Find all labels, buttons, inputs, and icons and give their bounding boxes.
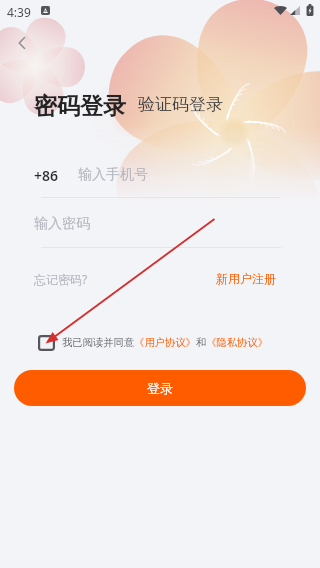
- staticText: 验证码登录: [138, 94, 223, 115]
- staticText: 密码登录: [34, 92, 126, 121]
- staticText: 输入手机号: [78, 166, 148, 184]
- staticText: 我已阅读并同意《用户协议》和《隐私协议》: [62, 336, 268, 349]
- staticText: 4:39: [7, 4, 31, 20]
- button[interactable]: 密码登录: [34, 92, 126, 121]
- staticText: 忘记密码?: [34, 271, 88, 287]
- button[interactable]: 忘记密码?: [34, 271, 88, 287]
- staticText: 登录: [147, 380, 173, 396]
- staticText: 输入密码: [34, 215, 90, 233]
- button[interactable]: Agree to terms: [37, 334, 55, 351]
- button[interactable]: 登录: [14, 370, 306, 406]
- staticText: +86: [34, 166, 59, 185]
- button[interactable]: Back: [7, 28, 37, 58]
- button[interactable]: 新用户注册: [216, 271, 276, 286]
- staticText: 新用户注册: [216, 271, 276, 286]
- button[interactable]: 验证码登录: [138, 94, 223, 115]
